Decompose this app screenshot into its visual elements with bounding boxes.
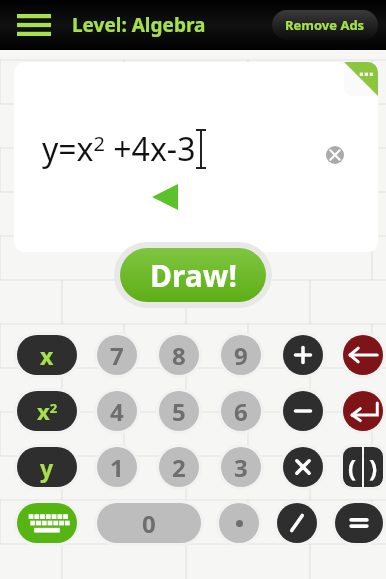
staticText: x — [40, 340, 54, 371]
button[interactable]: 8 — [159, 335, 199, 375]
button[interactable]: 9 — [221, 335, 261, 375]
staticText: 8 — [172, 339, 186, 372]
staticText: 1 — [110, 451, 124, 484]
button[interactable]: ) — [364, 447, 383, 487]
button[interactable]: Backspace — [343, 335, 383, 375]
staticText: Draw! — [150, 255, 237, 296]
button[interactable]: Clear — [320, 140, 350, 170]
staticText: 9 — [234, 339, 248, 372]
staticText: 0 — [142, 507, 156, 540]
staticText: Level: Algebra — [72, 12, 206, 38]
button[interactable]: 7 — [97, 335, 137, 375]
button[interactable]: 1 — [97, 447, 137, 487]
button[interactable]: Enter — [343, 391, 383, 431]
staticText: 2 — [172, 451, 186, 484]
button[interactable]: Divide — [277, 503, 317, 543]
button[interactable]: 5 — [159, 391, 199, 431]
button[interactable]: Minus — [283, 391, 323, 431]
staticText: y=x2 +4x-3 — [42, 127, 196, 171]
button[interactable]: Plus — [283, 335, 323, 375]
staticText: y — [40, 452, 54, 483]
staticText: 3 — [234, 451, 248, 484]
staticText: ( — [348, 451, 357, 484]
button[interactable]: Keyboard — [17, 503, 77, 543]
button[interactable]: Menu — [14, 10, 54, 40]
button[interactable]: 6 — [221, 391, 261, 431]
button[interactable]: 3 — [221, 447, 261, 487]
button[interactable]: ( — [343, 447, 362, 487]
staticText: 7 — [110, 339, 124, 372]
staticText: 6 — [234, 395, 248, 428]
button[interactable]: Draw! — [120, 248, 266, 302]
button[interactable]: Multiply — [283, 447, 323, 487]
button[interactable]: x2 — [17, 391, 77, 431]
button[interactable]: Decimal point — [219, 503, 259, 543]
staticText: ) — [369, 451, 378, 484]
staticText: Remove Ads — [285, 16, 365, 34]
other: Parentheses — [340, 444, 386, 490]
button[interactable]: x — [17, 335, 77, 375]
button[interactable]: More options — [340, 62, 378, 100]
button[interactable]: 2 — [159, 447, 199, 487]
button[interactable]: Remove Ads — [272, 10, 378, 40]
button[interactable]: Equals — [335, 503, 383, 543]
button[interactable]: 0 — [97, 503, 201, 543]
button[interactable]: y — [17, 447, 77, 487]
staticText: 4 — [110, 395, 124, 428]
button[interactable]: y=x2 +4x-3 — [14, 62, 378, 252]
button[interactable]: 4 — [97, 391, 137, 431]
staticText: x2 — [37, 396, 58, 426]
staticText: 5 — [172, 395, 186, 428]
